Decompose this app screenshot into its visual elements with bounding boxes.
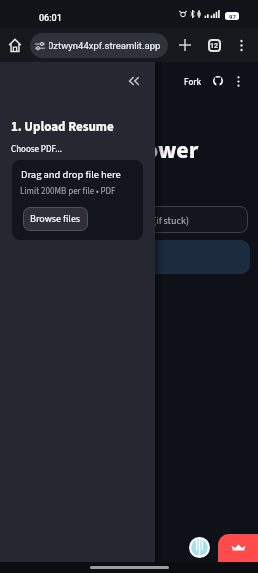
button[interactable]: 0ztwyn44xpf.streamlit.app [30, 33, 168, 58]
staticText: 97 [229, 13, 236, 20]
staticText: Drag and drop file here [21, 167, 121, 182]
staticText: Resume Power [42, 133, 199, 167]
button[interactable]: Tabs [201, 32, 227, 58]
button[interactable]: Browse files [23, 207, 88, 231]
button[interactable]: Paste job description (if stuck) [14, 206, 248, 233]
staticText: 0ztwyn44xpf.streamlit.app [49, 40, 161, 51]
button[interactable]: Collapse sidebar [123, 70, 145, 92]
button[interactable]: Main menu [228, 71, 248, 91]
button[interactable]: Streamlit [189, 537, 210, 558]
staticText: Paste job description (if stuck) [64, 214, 189, 228]
staticText: Browse files [30, 212, 81, 226]
button[interactable]: Manage app [218, 534, 258, 562]
button[interactable] [14, 240, 250, 274]
staticText: 1. Upload Resume [11, 118, 114, 137]
staticText: Choose PDF... [11, 143, 62, 156]
button[interactable]: Home [2, 32, 28, 58]
staticText: Limit 200MB per file • PDF [20, 185, 116, 198]
staticText: 12 [210, 42, 219, 50]
button[interactable]: New tab [172, 32, 198, 58]
button[interactable]: Fork [183, 74, 203, 91]
button[interactable]: GitHub [208, 71, 228, 91]
staticText: 06:01 [39, 13, 62, 24]
button[interactable]: More options [228, 32, 254, 58]
